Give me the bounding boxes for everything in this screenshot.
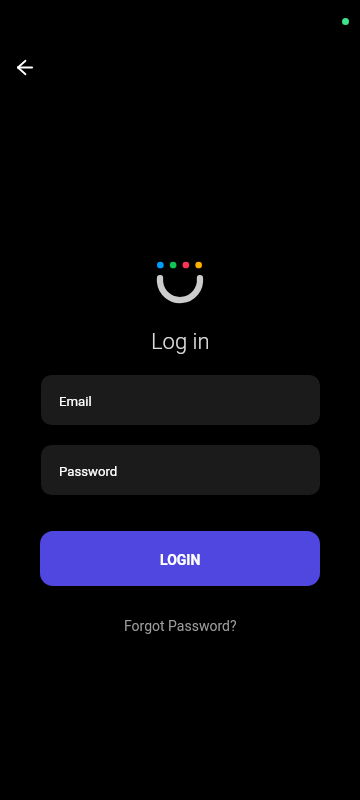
- staticText: LOGIN: [160, 552, 201, 568]
- staticText: Log in: [151, 329, 210, 355]
- button[interactable]: LOGIN: [40, 531, 320, 586]
- button[interactable]: Password: [41, 445, 320, 495]
- staticText: Forgot Password?: [124, 618, 237, 634]
- button[interactable]: Email: [41, 375, 320, 425]
- staticText: Email: [59, 394, 92, 409]
- other: App logo: [150, 255, 210, 310]
- staticText: Password: [59, 464, 118, 479]
- button[interactable]: Forgot Password?: [114, 612, 246, 640]
- button[interactable]: Back: [3, 45, 47, 89]
